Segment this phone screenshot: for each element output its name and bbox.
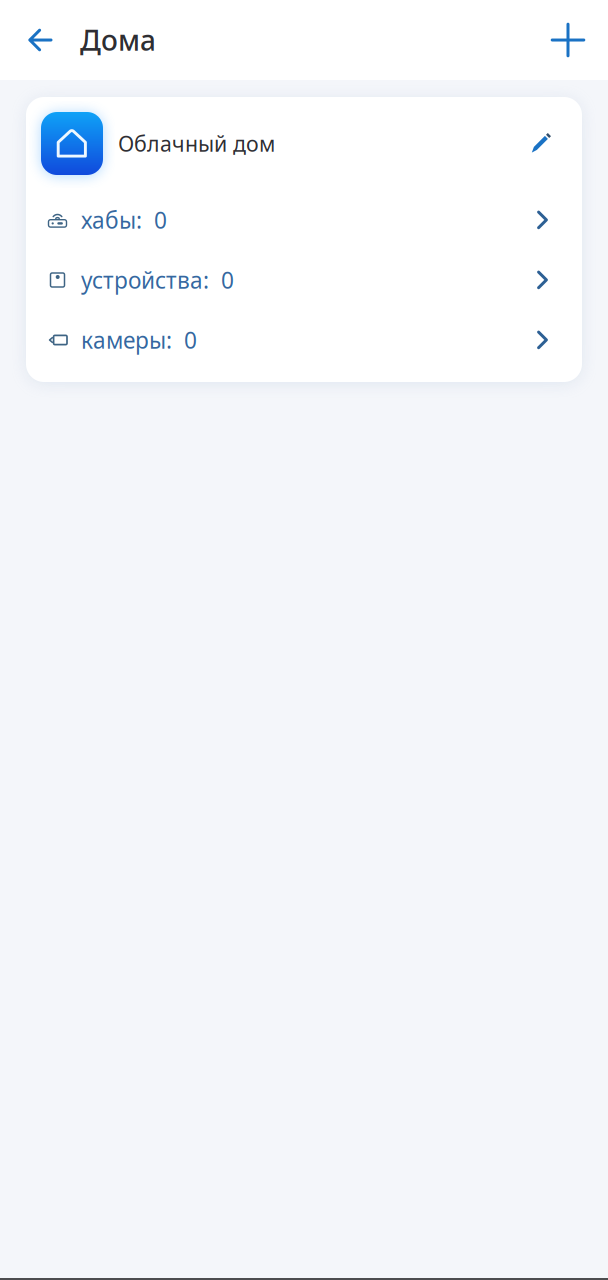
staticText: 0 bbox=[154, 205, 167, 235]
staticText: хабы: bbox=[81, 205, 142, 235]
button[interactable]: Back bbox=[17, 17, 63, 63]
button[interactable]: хабы: bbox=[26, 190, 582, 250]
staticText: Облачный дом bbox=[118, 129, 275, 158]
button[interactable]: Edit bbox=[523, 125, 559, 161]
staticText: 0 bbox=[184, 325, 197, 355]
button[interactable]: устройства: bbox=[26, 250, 582, 310]
staticText: 0 bbox=[221, 265, 234, 295]
button[interactable]: камеры: bbox=[26, 310, 582, 370]
button[interactable]: Add bbox=[545, 17, 591, 63]
staticText: камеры: bbox=[81, 325, 172, 355]
staticText: устройства: bbox=[81, 265, 209, 295]
staticText: Дома bbox=[80, 21, 156, 59]
